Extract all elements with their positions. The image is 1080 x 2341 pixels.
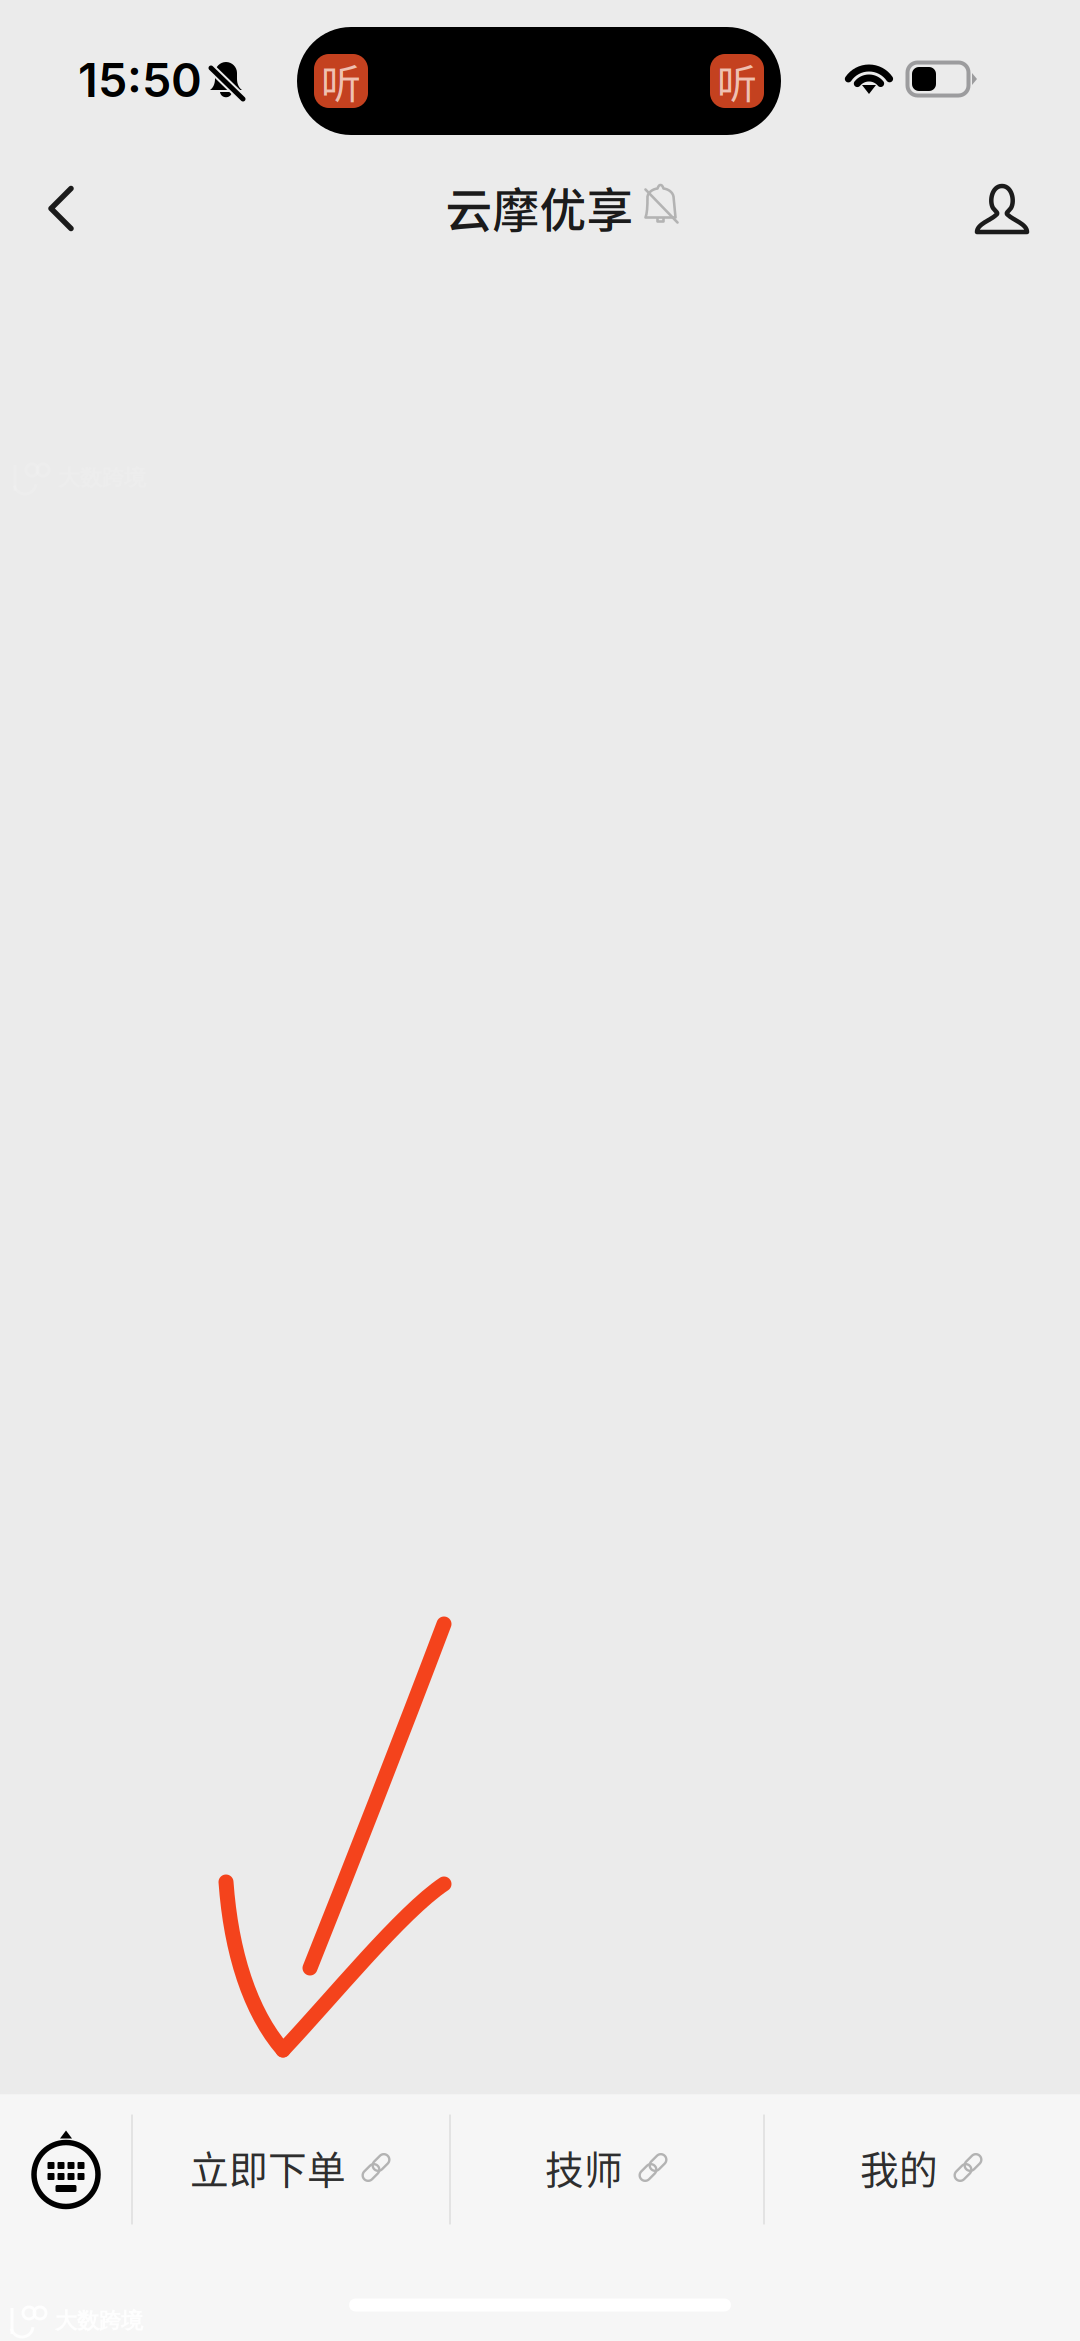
staticText: 云摩优享	[445, 173, 633, 241]
button[interactable]: Account	[947, 154, 1057, 264]
button[interactable]: 我的	[766, 2102, 1078, 2232]
staticText: 我的	[860, 2139, 938, 2195]
button[interactable]: 立即下单	[135, 2102, 447, 2232]
button[interactable]: Back	[7, 154, 117, 264]
button[interactable]: 技师	[451, 2102, 763, 2232]
staticText: 立即下单	[190, 2139, 346, 2195]
staticText: 15:50	[78, 52, 202, 108]
button[interactable]: Keyboard	[2, 2105, 130, 2233]
staticText: 听	[717, 52, 757, 110]
staticText: 大数跨境	[55, 2307, 143, 2335]
staticText: 听	[321, 52, 361, 110]
staticText: 技师	[545, 2139, 623, 2195]
